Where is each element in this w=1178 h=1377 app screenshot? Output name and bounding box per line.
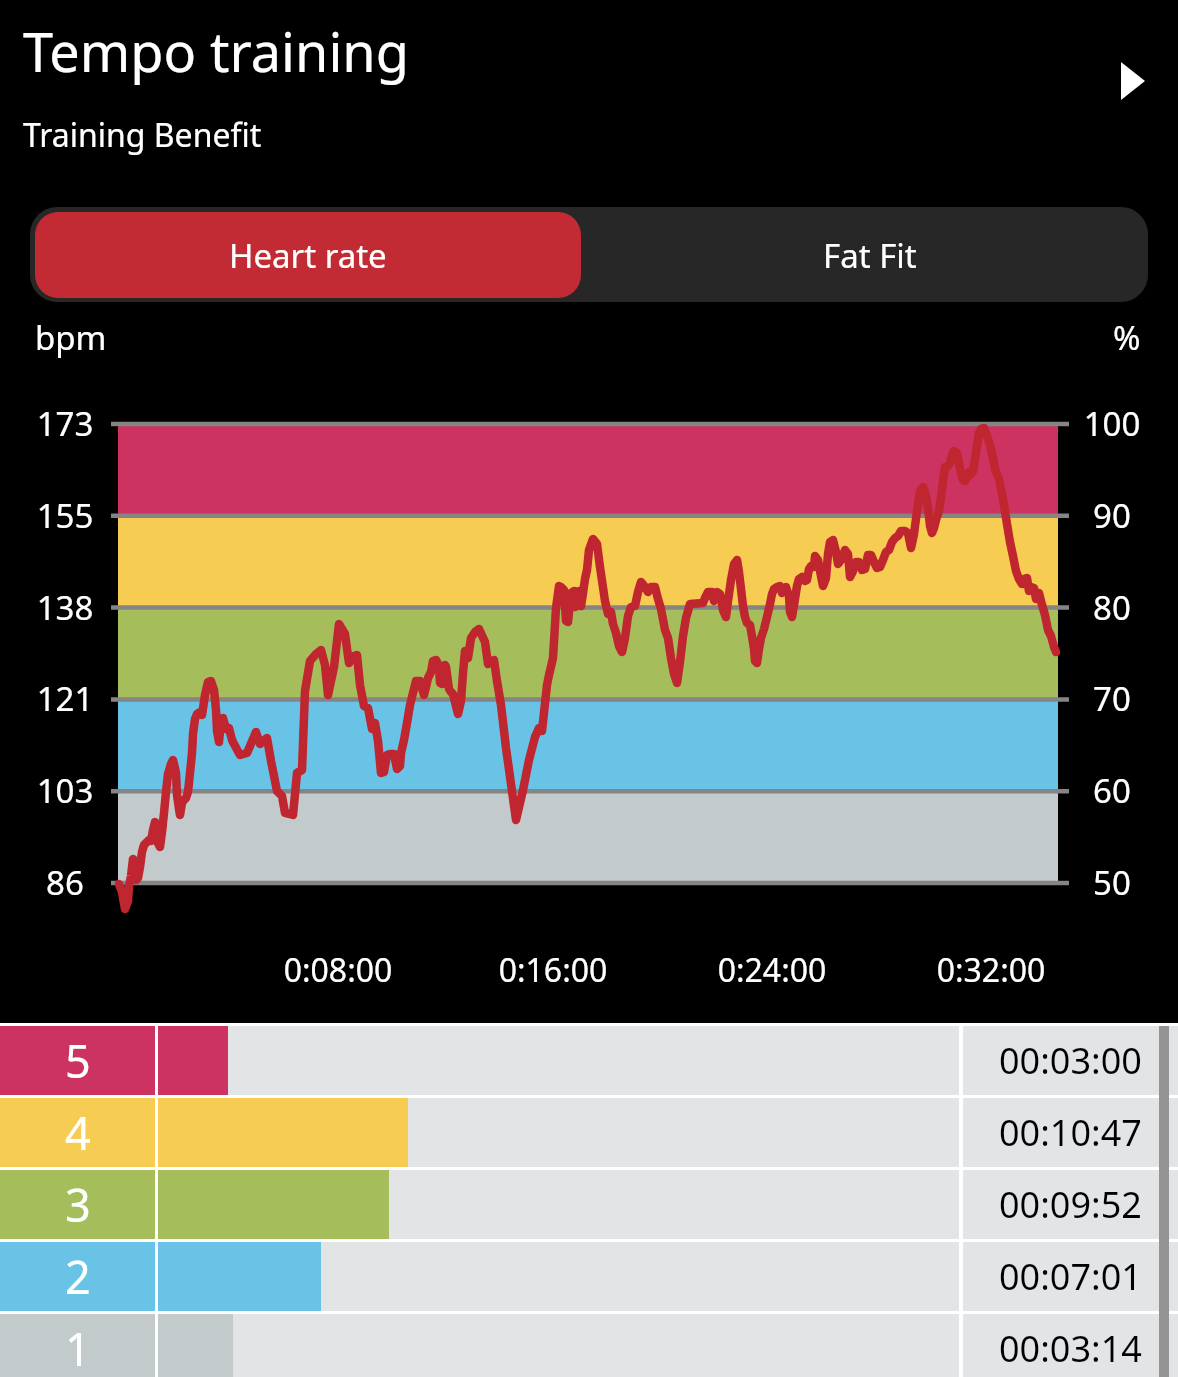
- staticText: 0:32:00: [901, 948, 1081, 992]
- staticText: 0:08:00: [248, 948, 428, 992]
- staticText: 86: [5, 860, 125, 905]
- staticText: 00:09:52: [999, 1180, 1142, 1229]
- staticText: 100: [1052, 401, 1172, 446]
- staticText: 121: [5, 676, 125, 721]
- staticText: Fat Fit: [823, 233, 917, 278]
- staticText: 0:16:00: [463, 948, 643, 992]
- staticText: 1: [65, 1318, 91, 1377]
- staticText: 60: [1052, 768, 1172, 813]
- staticText: 5: [65, 1030, 91, 1091]
- staticText: 80: [1052, 585, 1172, 630]
- staticText: 50: [1052, 860, 1172, 905]
- button[interactable]: Zone 1, 00:03:14: [0, 1314, 1178, 1377]
- staticText: 00:03:00: [999, 1036, 1142, 1085]
- button[interactable]: Zone 2, 00:07:01: [0, 1242, 1178, 1311]
- button[interactable]: Zone 5, 00:03:00: [0, 1026, 1178, 1095]
- staticText: 00:10:47: [999, 1108, 1142, 1157]
- button[interactable]: Heart rate: [35, 212, 581, 298]
- staticText: 90: [1052, 493, 1172, 538]
- staticText: 70: [1052, 676, 1172, 721]
- button[interactable]: Zone 4, 00:10:47: [0, 1098, 1178, 1167]
- button[interactable]: Play: [1100, 50, 1162, 112]
- staticText: Training Benefit: [23, 113, 262, 157]
- staticText: 0:24:00: [682, 948, 862, 992]
- staticText: %: [1113, 315, 1141, 360]
- staticText: Tempo training: [23, 14, 409, 88]
- staticText: 3: [65, 1174, 91, 1235]
- staticText: 00:03:14: [999, 1324, 1142, 1373]
- button[interactable]: Zone 3, 00:09:52: [0, 1170, 1178, 1239]
- staticText: 103: [5, 768, 125, 813]
- staticText: bpm: [35, 315, 107, 360]
- staticText: 2: [65, 1246, 91, 1307]
- staticText: Heart rate: [229, 233, 387, 278]
- staticText: 4: [65, 1102, 91, 1163]
- staticText: 138: [5, 585, 125, 630]
- button[interactable]: Fat Fit: [581, 207, 1148, 302]
- staticText: 155: [5, 493, 125, 538]
- staticText: 00:07:01: [999, 1252, 1142, 1301]
- staticText: 173: [5, 401, 125, 446]
